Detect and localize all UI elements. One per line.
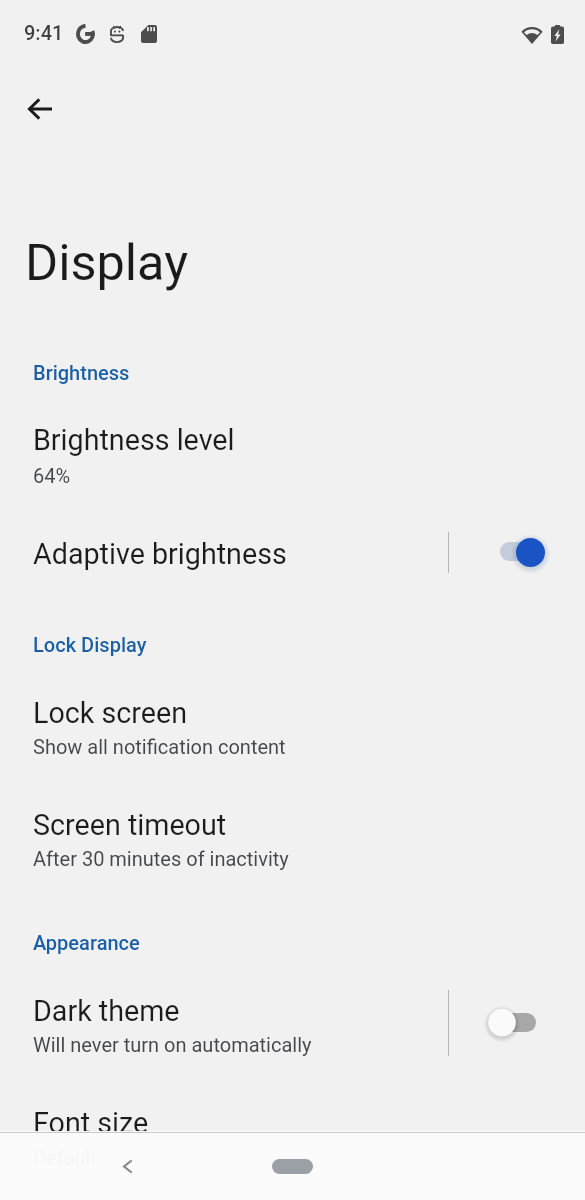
button[interactable]: Back (103, 1142, 151, 1190)
staticText: Lock Display (33, 633, 147, 656)
button[interactable]: Home (272, 1159, 313, 1174)
staticText: 64% (33, 464, 71, 487)
button[interactable]: Brightness (0, 351, 585, 395)
staticText: Brightness level (33, 423, 235, 457)
staticText: Font size (33, 1106, 149, 1140)
staticText: Screen timeout (33, 808, 227, 842)
staticText: Dark theme (33, 994, 180, 1028)
staticText: Adaptive brightness (33, 537, 287, 571)
staticText: 9:41 (24, 21, 64, 44)
staticText: Display (25, 233, 189, 292)
staticText: Will never turn on automatically (33, 1033, 312, 1056)
staticText: Show all notification content (33, 735, 286, 758)
button[interactable]: Back (16, 85, 64, 133)
staticText: Appearance (33, 931, 140, 954)
button[interactable]: Appearance (0, 921, 585, 965)
staticText: Lock screen (33, 696, 188, 730)
staticText: Brightness (33, 361, 130, 384)
staticText: After 30 minutes of inactivity (33, 847, 289, 870)
button[interactable]: Lock Display (0, 623, 585, 667)
button[interactable]: Adaptive brightness toggle, on (480, 520, 560, 582)
button[interactable]: Dark theme toggle, off (469, 991, 549, 1053)
